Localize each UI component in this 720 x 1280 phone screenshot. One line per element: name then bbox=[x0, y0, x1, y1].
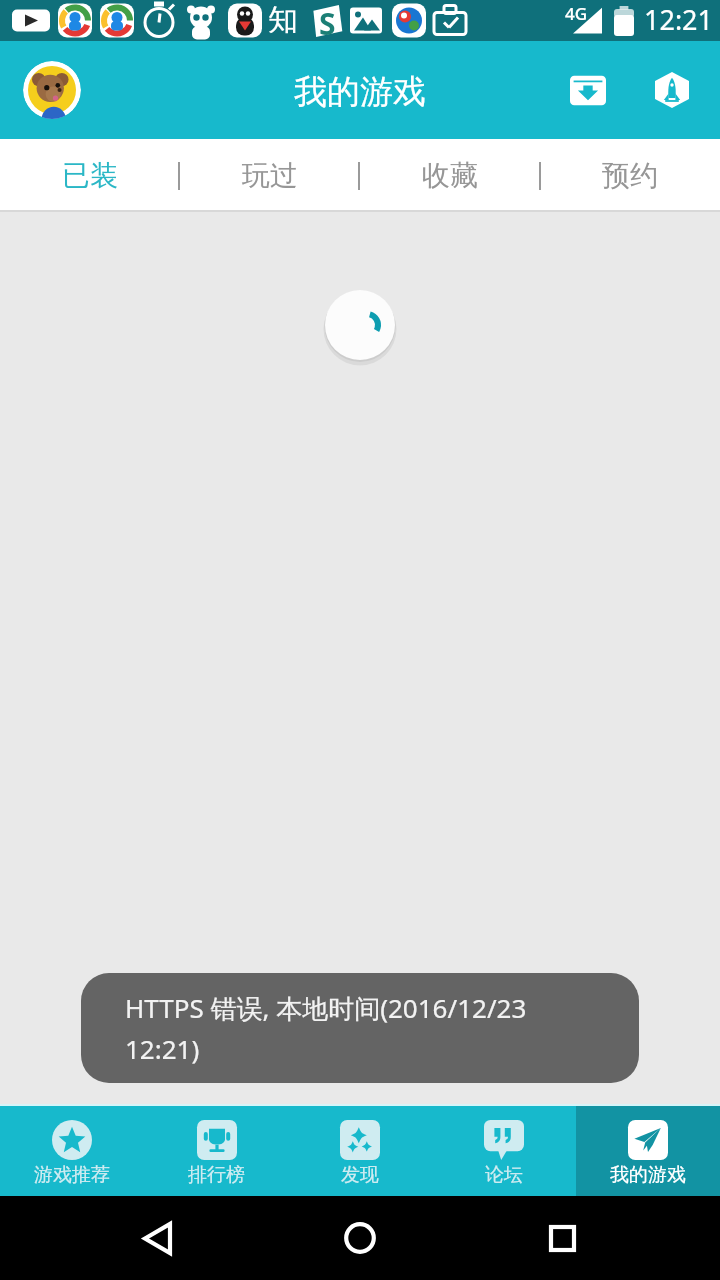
staticText: 预约 bbox=[602, 158, 658, 193]
button[interactable]: 预约 bbox=[540, 139, 720, 212]
button[interactable]: Profile bbox=[12, 50, 92, 130]
button[interactable]: Downloads bbox=[561, 63, 615, 117]
button[interactable]: 收藏 bbox=[360, 139, 540, 212]
button[interactable]: Boost bbox=[645, 63, 699, 117]
button[interactable]: 玩过 bbox=[180, 139, 360, 212]
button[interactable]: 论坛 bbox=[432, 1106, 576, 1196]
staticText: 我的游戏 bbox=[610, 1163, 686, 1187]
staticText: 游戏推荐 bbox=[34, 1163, 110, 1187]
button[interactable]: Home bbox=[320, 1198, 400, 1278]
button[interactable]: Recents bbox=[522, 1198, 602, 1278]
button[interactable]: 发现 bbox=[288, 1106, 432, 1196]
staticText: 论坛 bbox=[485, 1163, 523, 1187]
button[interactable]: 我的游戏 bbox=[576, 1106, 720, 1196]
button[interactable]: 已装 bbox=[0, 139, 180, 212]
button[interactable]: Back bbox=[117, 1198, 197, 1278]
staticText: 已装 bbox=[62, 158, 118, 193]
staticText: 12:21 bbox=[644, 1, 714, 38]
staticText: 发现 bbox=[341, 1163, 379, 1187]
staticText: 收藏 bbox=[422, 158, 478, 193]
staticText: 4G bbox=[565, 2, 588, 25]
staticText: 知 bbox=[268, 1, 298, 39]
staticText: HTTPS 错误, 本地时间(2016/12/23 12:21) bbox=[125, 990, 527, 1066]
staticText: 排行榜 bbox=[188, 1163, 245, 1187]
staticText: 玩过 bbox=[242, 158, 298, 193]
staticText: S bbox=[319, 3, 336, 37]
button[interactable]: 排行榜 bbox=[144, 1106, 288, 1196]
button[interactable]: 游戏推荐 bbox=[0, 1106, 144, 1196]
staticText: 我的游戏 bbox=[294, 71, 426, 113]
